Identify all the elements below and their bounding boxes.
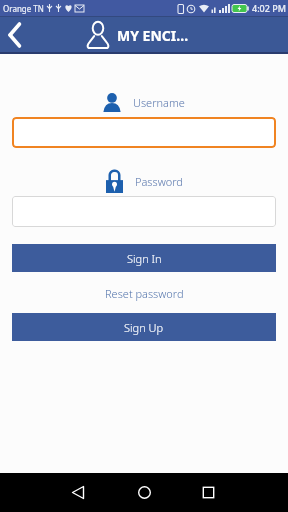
staticText: 4:02 PM — [252, 2, 286, 14]
staticText: MY ENCI... — [117, 26, 189, 45]
staticText: Reset password — [105, 286, 184, 301]
button[interactable] — [12, 117, 276, 148]
button[interactable] — [63, 473, 93, 512]
button[interactable] — [8, 22, 21, 48]
staticText: Sign In — [127, 251, 162, 266]
button[interactable] — [12, 196, 276, 227]
button[interactable]: Reset password — [105, 286, 184, 301]
button[interactable] — [129, 473, 159, 512]
button[interactable]: Sign In — [12, 244, 276, 272]
button[interactable]: Sign Up — [12, 313, 276, 341]
staticText: Password — [135, 174, 183, 189]
staticText: Username — [133, 95, 185, 110]
staticText: Sign Up — [124, 320, 164, 335]
staticText: Orange TN — [3, 3, 44, 14]
button[interactable] — [193, 473, 223, 512]
